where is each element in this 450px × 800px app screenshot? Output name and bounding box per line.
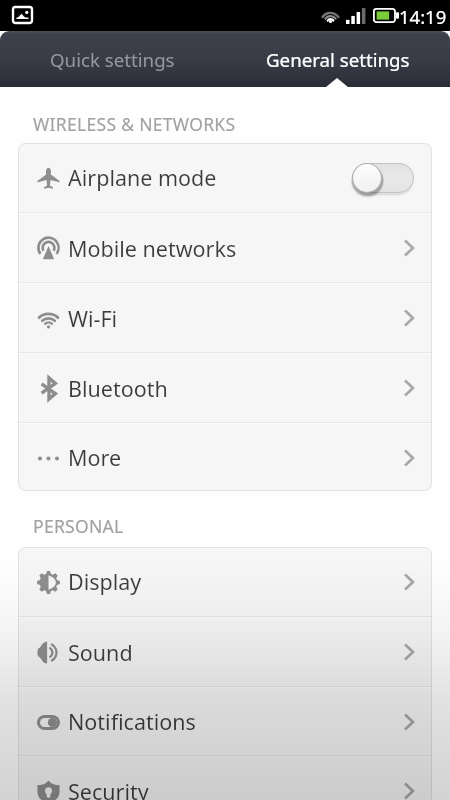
- staticText: Mobile networks: [68, 234, 237, 263]
- button[interactable]: Security: [18, 757, 432, 800]
- staticText: Airplane mode: [68, 163, 217, 192]
- staticText: Wi-Fi: [68, 304, 118, 333]
- button[interactable]: More: [18, 424, 432, 491]
- button[interactable]: Display: [18, 547, 432, 616]
- button[interactable]: Notifications: [18, 688, 432, 755]
- staticText: PERSONAL: [33, 514, 124, 538]
- button[interactable]: Mobile networks: [18, 214, 432, 282]
- staticText: Sound: [68, 638, 133, 667]
- button[interactable]: Airplane mode toggle: [352, 158, 414, 198]
- button[interactable]: Wi-Fi: [18, 284, 432, 352]
- staticText: Quick settings: [50, 47, 175, 72]
- button[interactable]: Airplane mode: [18, 143, 432, 212]
- staticText: Notifications: [68, 707, 196, 736]
- button[interactable]: Quick settings: [0, 31, 225, 87]
- button[interactable]: Bluetooth: [18, 354, 432, 422]
- staticText: Display: [68, 567, 142, 596]
- staticText: More: [68, 443, 122, 472]
- staticText: General settings: [266, 47, 410, 72]
- staticText: Security: [68, 777, 149, 800]
- button[interactable]: Sound: [18, 618, 432, 686]
- staticText: Bluetooth: [68, 374, 168, 403]
- button[interactable]: General settings: [225, 31, 450, 87]
- staticText: 14:19: [399, 4, 447, 29]
- staticText: WIRELESS & NETWORKS: [33, 112, 236, 136]
